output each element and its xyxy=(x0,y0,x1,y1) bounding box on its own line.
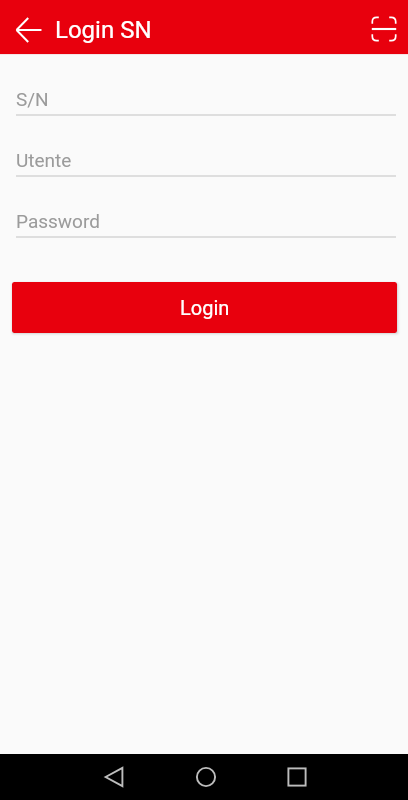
staticText: Login SN xyxy=(55,16,152,44)
button[interactable]: Utente xyxy=(0,149,408,177)
button[interactable]: Back xyxy=(91,754,137,800)
staticText: Utente xyxy=(16,149,72,171)
button[interactable]: Home xyxy=(183,754,229,800)
button[interactable]: Scan barcode xyxy=(366,11,402,47)
button[interactable]: S/N xyxy=(0,88,408,116)
button[interactable]: Recent apps xyxy=(274,754,320,800)
staticText: Login xyxy=(180,296,230,319)
staticText: Password xyxy=(16,210,100,232)
button[interactable]: Password xyxy=(0,210,408,238)
button[interactable]: Navigate up xyxy=(11,12,47,48)
button[interactable]: Login xyxy=(12,282,397,333)
staticText: S/N xyxy=(16,88,49,110)
